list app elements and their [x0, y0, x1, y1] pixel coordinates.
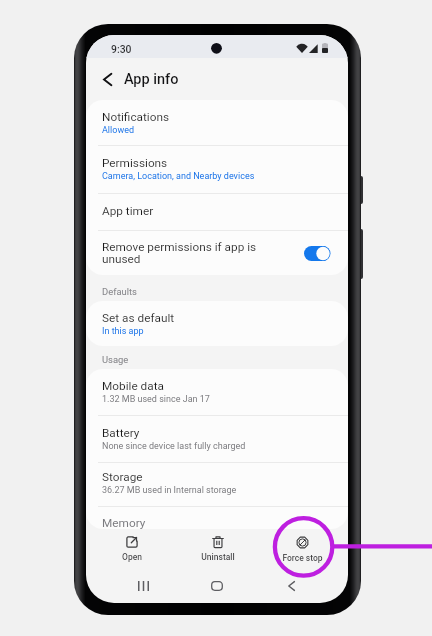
staticText: Defaults [102, 286, 137, 297]
staticText: Battery [102, 426, 140, 440]
button[interactable]: Uninstall [175, 529, 260, 572]
staticText: Remove permissions if app is [102, 240, 257, 254]
button[interactable]: Open [89, 529, 175, 572]
button[interactable]: Navigate up [95, 67, 119, 91]
staticText: Memory [102, 516, 146, 529]
staticText: Permissions [102, 156, 168, 170]
button[interactable]: Home [180, 570, 254, 601]
staticText: Open [122, 552, 142, 562]
staticText: 9:30 [111, 43, 132, 55]
staticText: Camera, Location, and Nearby devices [102, 171, 255, 182]
button[interactable]: Back [254, 570, 328, 601]
staticText: Force stop [282, 553, 323, 563]
staticText: Allowed [102, 125, 134, 136]
staticText: 36.27 MB used in Internal storage [102, 485, 237, 496]
button[interactable]: Mobile data [86, 369, 348, 416]
staticText: None since device last fully charged [102, 441, 246, 452]
staticText: App timer [102, 204, 154, 218]
button[interactable]: App timer [86, 194, 348, 231]
staticText: Storage [102, 470, 143, 484]
button[interactable]: Permissions [86, 146, 348, 194]
button[interactable]: Force stop [260, 529, 345, 572]
button[interactable]: Notifications [86, 100, 348, 146]
button[interactable]: Memory [86, 507, 348, 529]
staticText: App info [124, 71, 179, 88]
staticText: Set as default [102, 311, 175, 325]
button[interactable]: Recent apps [106, 570, 180, 601]
button[interactable]: Remove permissions if app is [86, 231, 348, 275]
staticText: 1.32 MB used since Jan 17 [102, 394, 210, 405]
staticText: Mobile data [102, 379, 164, 393]
staticText: unused [102, 252, 141, 266]
staticText: Uninstall [201, 552, 235, 562]
button[interactable]: Storage [86, 463, 348, 507]
staticText: Notifications [102, 110, 170, 124]
button[interactable]: Set as default [86, 301, 348, 346]
staticText: Usage [102, 354, 129, 365]
staticText: In this app [102, 326, 144, 337]
button[interactable]: Battery [86, 416, 348, 463]
